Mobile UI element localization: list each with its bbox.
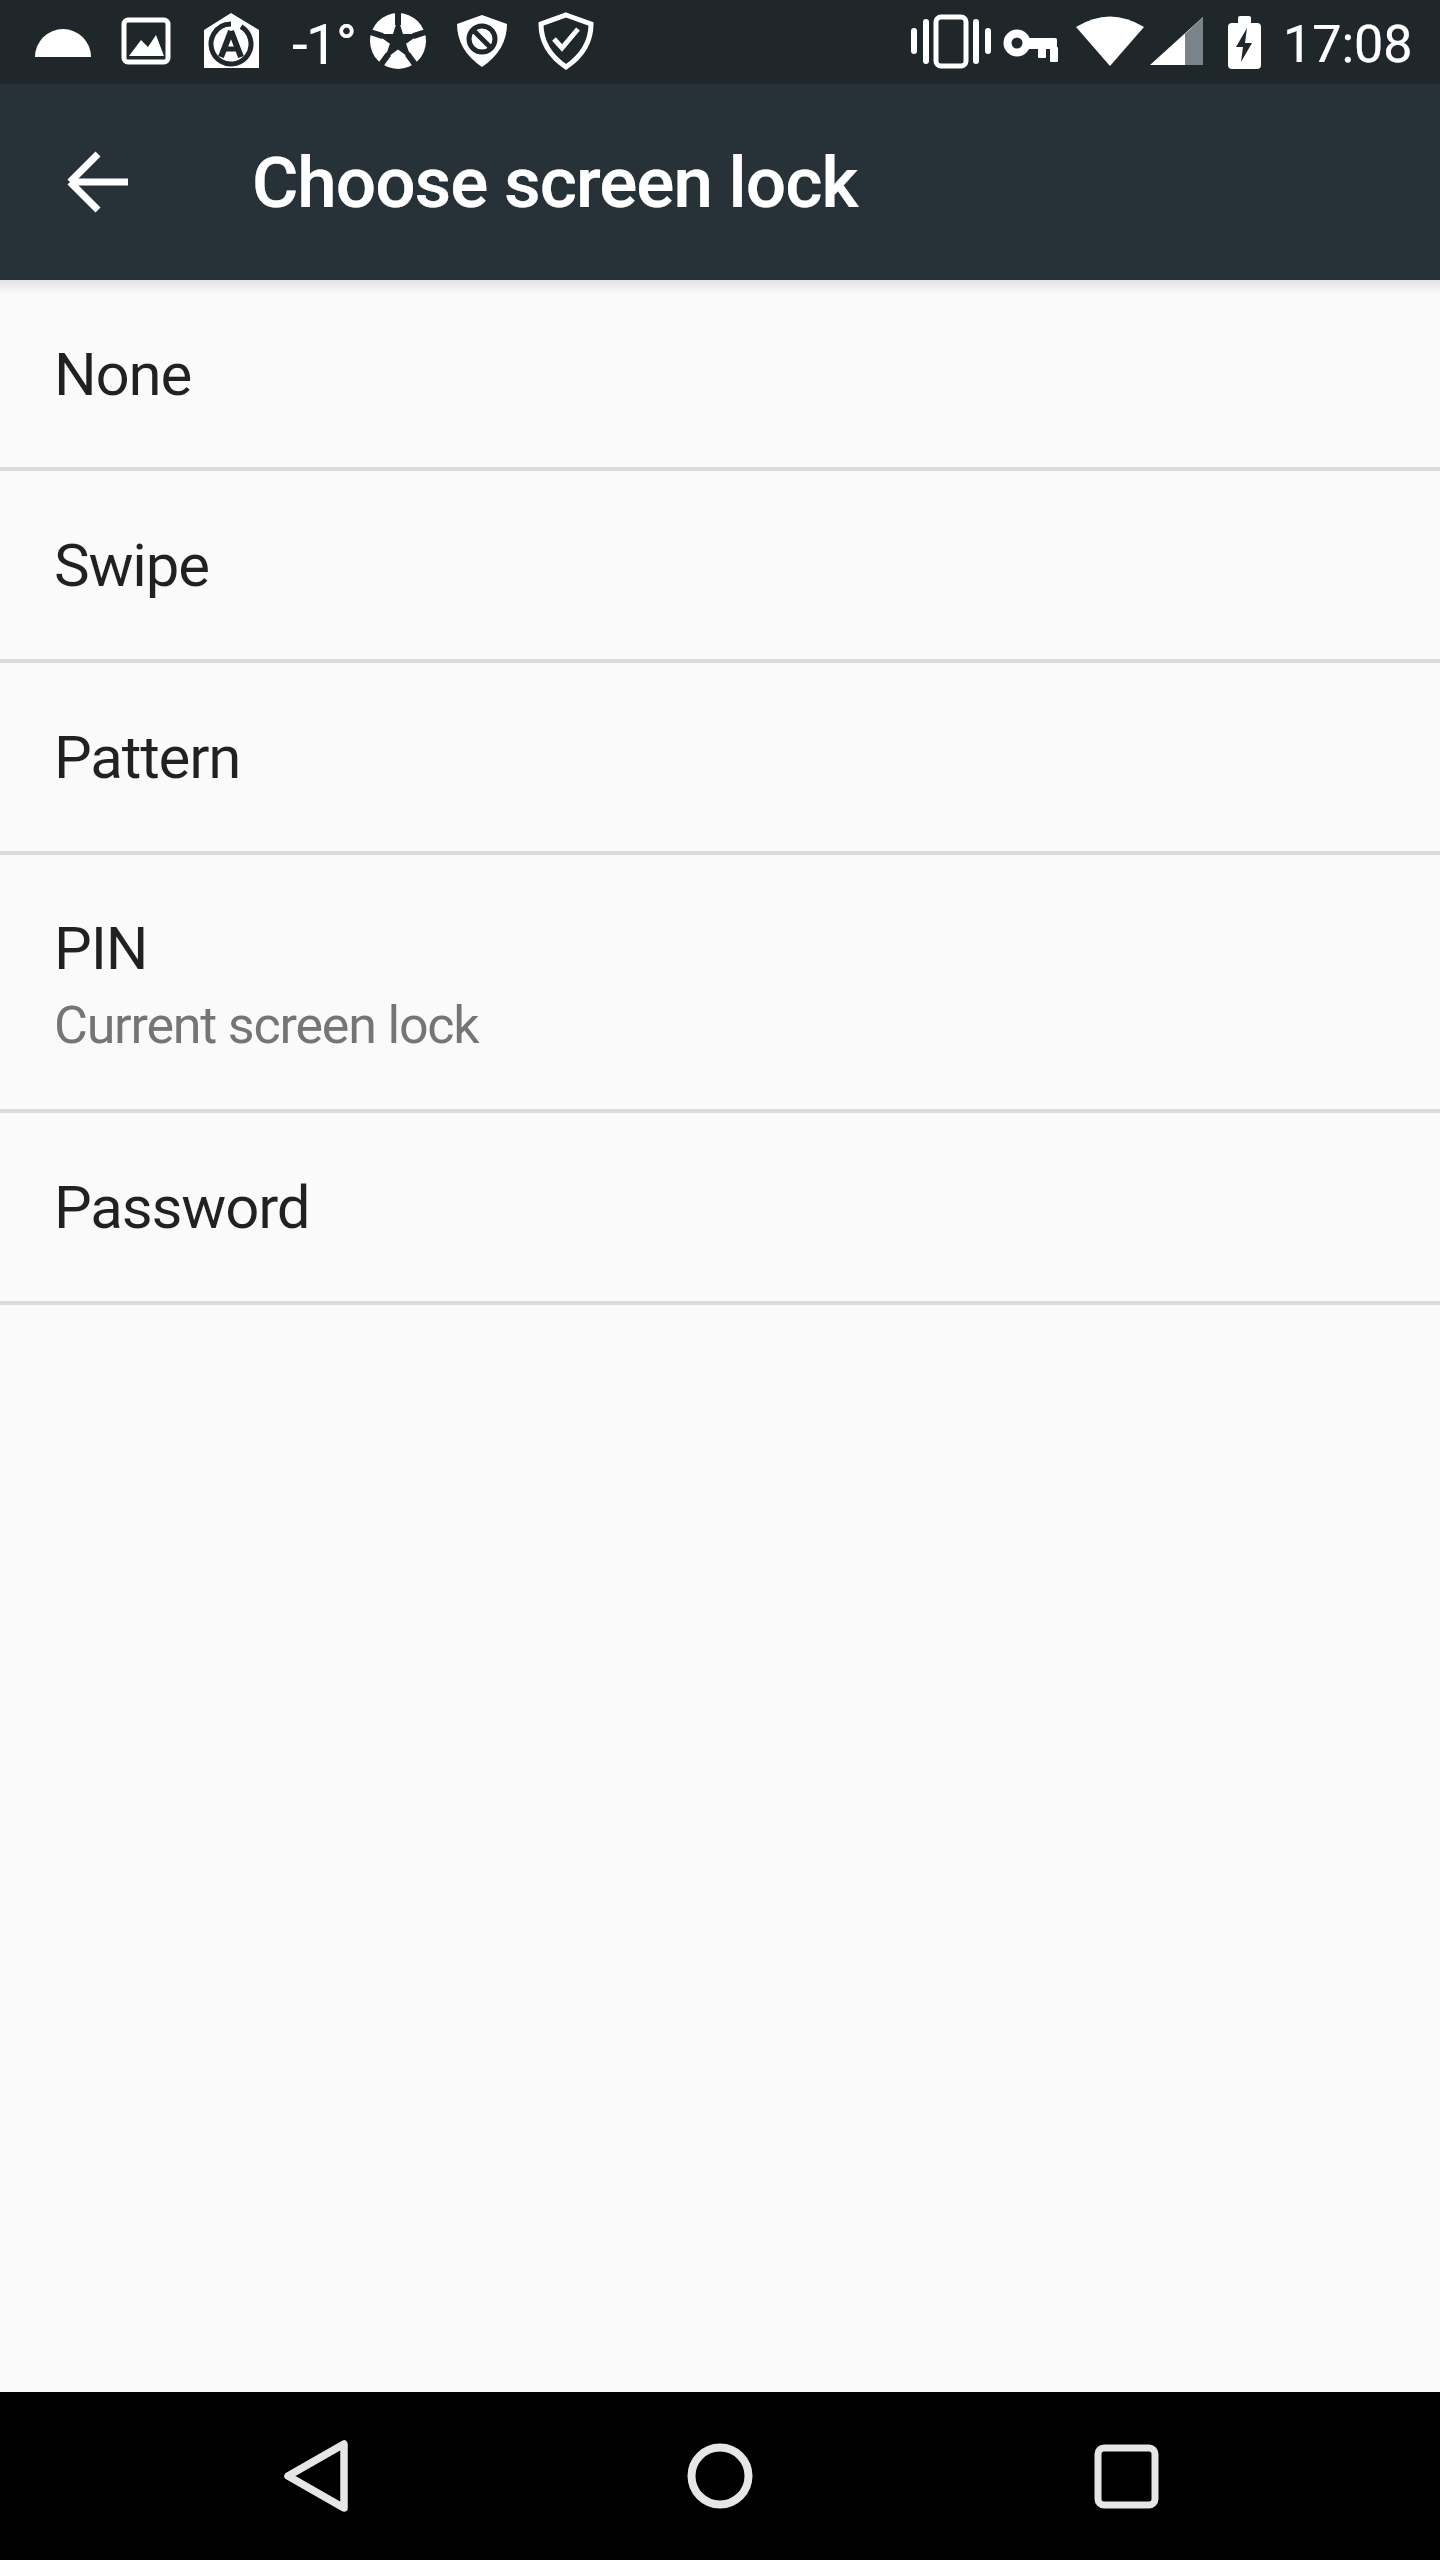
button[interactable] — [15, 98, 183, 266]
staticText: Current screen lock — [54, 995, 479, 1056]
button[interactable]: Password — [0, 1113, 1440, 1301]
staticText: 17:08 — [1283, 14, 1413, 75]
button[interactable] — [636, 2392, 804, 2560]
staticText: None — [54, 339, 192, 409]
staticText: Pattern — [54, 722, 241, 792]
button[interactable]: Swipe — [0, 471, 1440, 659]
staticText: PIN — [54, 913, 148, 983]
button[interactable]: Pattern — [0, 663, 1440, 851]
staticText: Swipe — [54, 530, 209, 600]
button[interactable] — [232, 2392, 400, 2560]
staticText: Password — [54, 1172, 310, 1242]
button[interactable] — [1042, 2392, 1210, 2560]
button[interactable]: None — [0, 280, 1440, 467]
button[interactable]: PIN — [0, 855, 1440, 1109]
staticText: -1° — [292, 12, 356, 78]
staticText: Choose screen lock — [252, 141, 858, 224]
